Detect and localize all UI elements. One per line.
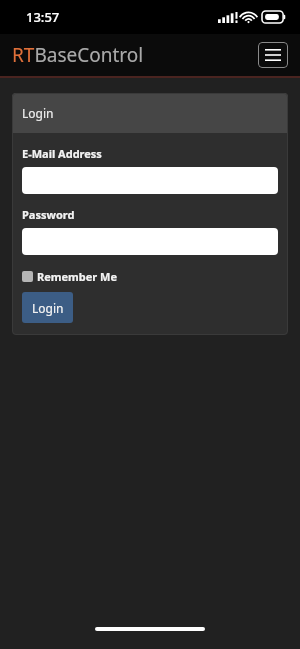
staticText: Login [32,300,64,316]
button[interactable]: Text input field [22,228,278,255]
staticText: Password [22,207,75,222]
button[interactable]: RTBaseControl [10,40,146,70]
button[interactable]: Text input field [22,167,278,194]
staticText: E-Mail Address [22,146,102,161]
button[interactable]: Login [22,292,73,323]
staticText: RTBaseControl [12,42,144,68]
staticText: 13:57 [26,8,60,26]
button[interactable]: Open navigation menu [258,42,288,68]
staticText: Login [22,105,54,121]
staticText: Remember Me [37,269,118,284]
button[interactable]: Remember Me [22,269,118,284]
